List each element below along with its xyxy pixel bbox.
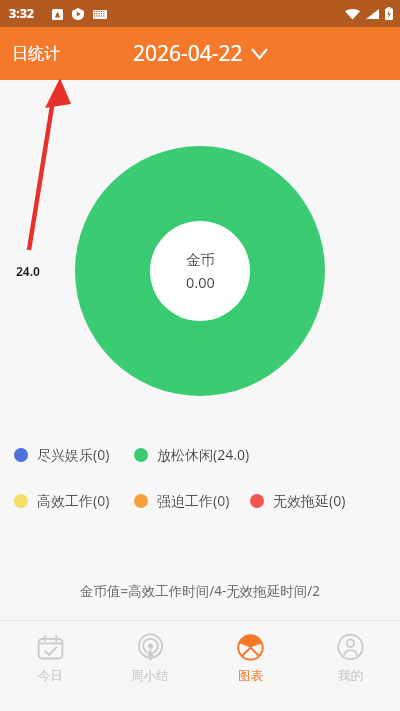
staticText: 金币值=高效工作时间/4-无效拖延时间/2	[0, 582, 400, 600]
staticText: 我的	[338, 668, 363, 684]
button[interactable]: 图表	[200, 621, 300, 711]
staticText: 24.0	[16, 263, 40, 279]
button[interactable]: 无效拖延(0)	[250, 491, 346, 510]
staticText: 3:32	[9, 5, 34, 22]
staticText: 图表	[238, 668, 263, 684]
staticText: 高效工作(0)	[37, 491, 110, 510]
staticText: 金币	[186, 251, 215, 269]
staticText: 2026-04-22	[133, 39, 243, 68]
button[interactable]: 日统计	[0, 38, 68, 70]
button[interactable]: 放松休闲(24.0)	[134, 445, 250, 464]
staticText: 尽兴娱乐(0)	[37, 445, 110, 464]
button[interactable]: 尽兴娱乐(0)	[14, 445, 110, 464]
button[interactable]: 周小结	[100, 621, 200, 711]
button[interactable]: 我的	[300, 621, 400, 711]
staticText: 0.00	[186, 272, 215, 292]
button[interactable]: 高效工作(0)	[14, 491, 110, 510]
staticText: 日统计	[12, 44, 60, 64]
staticText: 放松休闲(24.0)	[157, 445, 250, 464]
staticText: 无效拖延(0)	[273, 491, 346, 510]
button[interactable]: 2026-04-22	[123, 33, 277, 74]
staticText: 周小结	[131, 668, 169, 684]
staticText: 强迫工作(0)	[157, 491, 230, 510]
button[interactable]: 今日	[0, 621, 100, 711]
staticText: 今日	[38, 668, 63, 684]
button[interactable]: 强迫工作(0)	[134, 491, 230, 510]
